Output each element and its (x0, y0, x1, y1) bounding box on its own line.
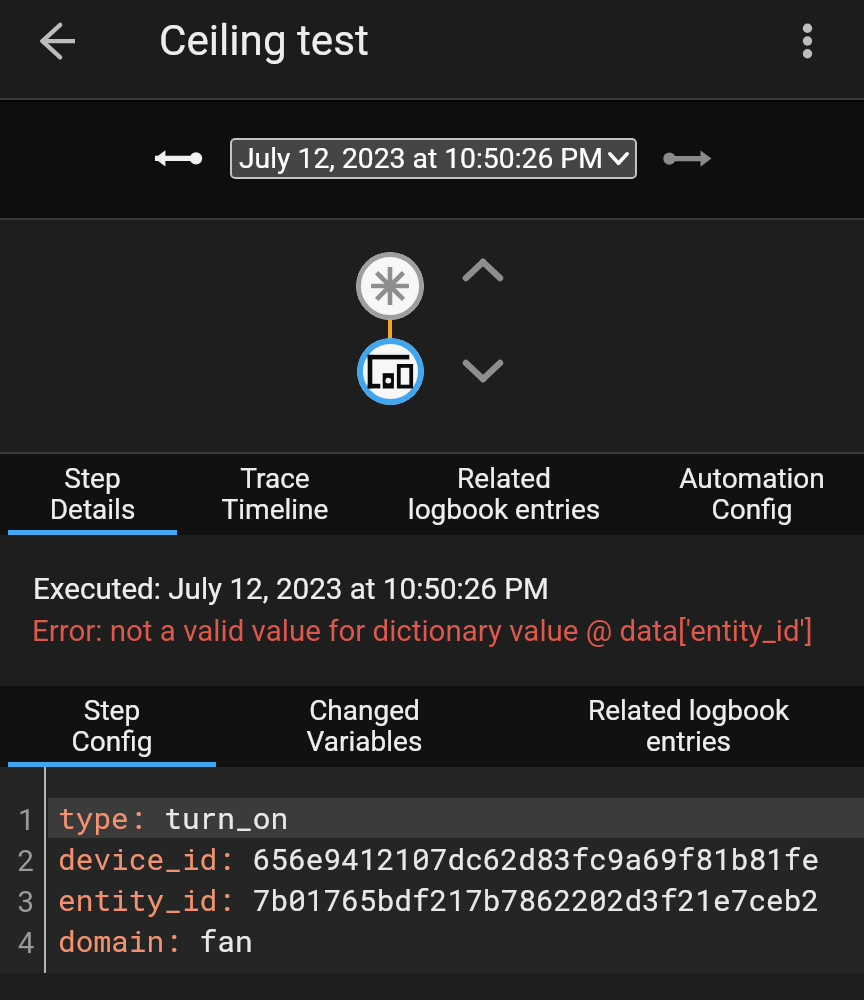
button[interactable]: Step (8, 686, 216, 767)
staticText: domain: fan (58, 921, 253, 960)
staticText: Step (8, 694, 216, 727)
staticText: Executed: July 12, 2023 at 10:50:26 PM (33, 572, 549, 607)
staticText: 4 (0, 922, 35, 961)
staticText: entity_id: 7b01765bdf217b7862202d3f21e7c… (58, 880, 820, 919)
staticText: device_id: 656e9412107dc62d83fc9a69f81b8… (58, 839, 820, 878)
button[interactable]: Next step (657, 134, 723, 184)
staticText: Config (638, 493, 864, 526)
staticText: Details (8, 493, 177, 526)
staticText: Trace (177, 462, 373, 495)
button[interactable]: Trace (177, 454, 373, 535)
staticText: Config (8, 725, 216, 758)
staticText: entries (513, 725, 864, 758)
button[interactable]: Changed (216, 686, 513, 767)
button[interactable]: Device action node (357, 338, 424, 405)
staticText: 3 (0, 881, 35, 920)
staticText: Related (373, 462, 635, 495)
staticText: Step (8, 462, 177, 495)
staticText: Related logbook (513, 694, 864, 727)
staticText: July 12, 2023 at 10:50:26 PM (239, 142, 603, 175)
staticText: 2 (0, 840, 35, 879)
button[interactable]: Automation (638, 454, 864, 535)
button[interactable]: July 12, 2023 at 10:50:26 PM (230, 138, 637, 179)
staticText: Changed (216, 694, 513, 727)
staticText: Ceiling test (159, 16, 369, 65)
button[interactable]: Step (8, 454, 177, 535)
button[interactable]: Next node (452, 340, 514, 402)
button[interactable]: Previous node (452, 239, 514, 301)
button[interactable]: Related (373, 454, 635, 535)
staticText: Error: not a valid value for dictionary … (32, 614, 813, 649)
button[interactable]: Related logbook (513, 686, 864, 767)
staticText: Timeline (177, 493, 373, 526)
button[interactable]: Back (24, 7, 92, 75)
staticText: Variables (216, 725, 513, 758)
staticText: type: turn_on (58, 798, 289, 837)
staticText: 1 (0, 799, 35, 838)
button[interactable]: Trigger node (356, 252, 424, 320)
button[interactable]: More options (775, 9, 839, 73)
button[interactable]: Previous step (143, 134, 209, 184)
staticText: Automation (638, 462, 864, 495)
staticText: logbook entries (373, 493, 635, 526)
